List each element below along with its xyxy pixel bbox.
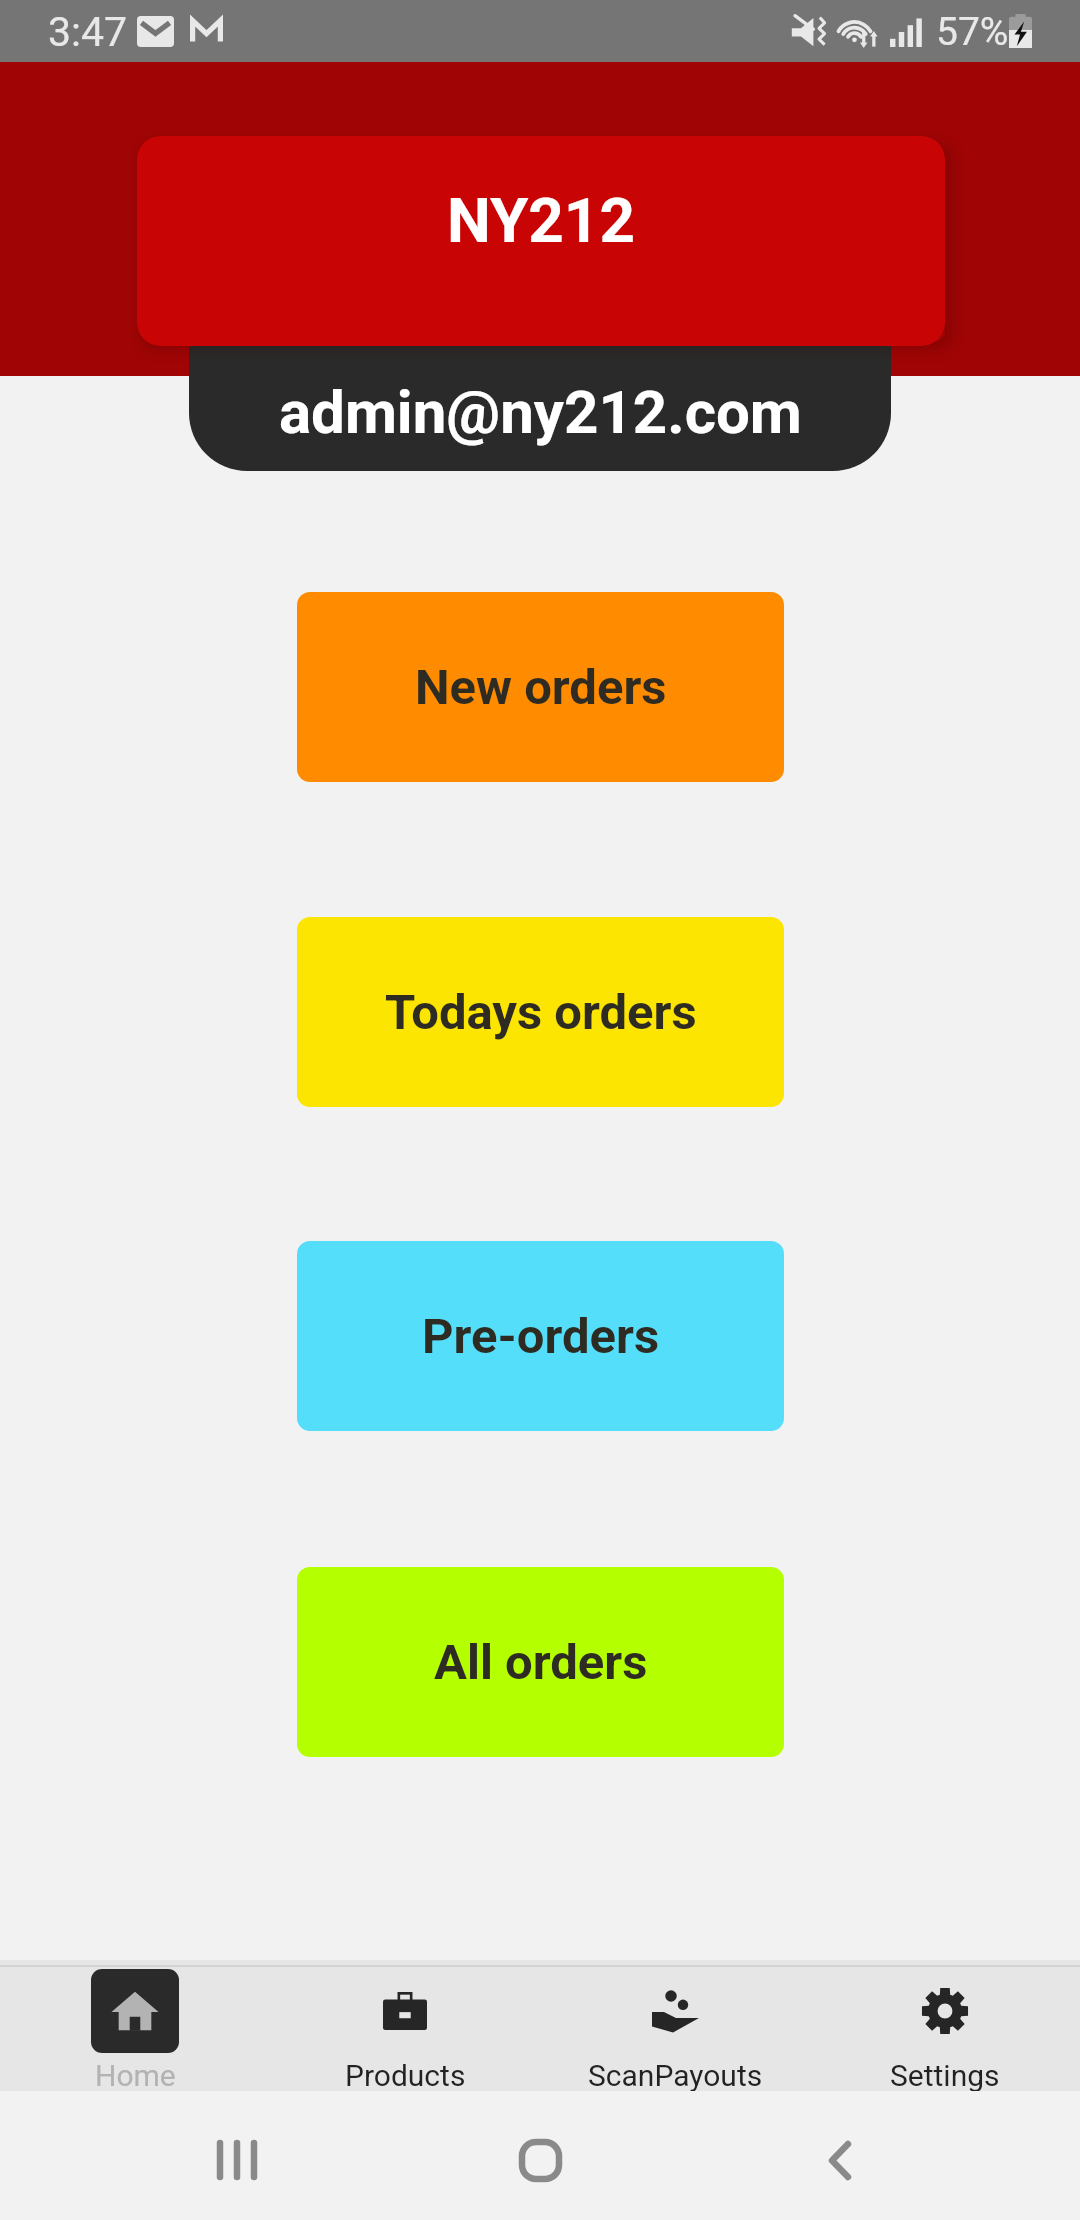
other: Home: [111, 1987, 159, 2035]
staticText: ScanPayouts: [588, 2058, 763, 2091]
button[interactable]: All orders: [297, 1567, 784, 1757]
staticText: Settings: [890, 2058, 1000, 2091]
other: Settings: [921, 1987, 969, 2035]
staticText: All orders: [434, 1634, 648, 1691]
button[interactable]: Settings: [810, 1960, 1080, 2091]
staticText: Products: [345, 2058, 466, 2091]
button[interactable]: Home: [480, 2105, 600, 2215]
button[interactable]: Back: [780, 2105, 900, 2215]
other: Products: [383, 1992, 427, 2030]
staticText: 57%: [936, 9, 1009, 55]
button[interactable]: Pre-orders: [297, 1241, 784, 1431]
staticText: Home: [95, 2058, 176, 2091]
button[interactable]: New orders: [297, 592, 784, 782]
staticText: New orders: [415, 659, 667, 716]
button[interactable]: Products: [270, 1960, 540, 2091]
staticText: Pre-orders: [422, 1308, 660, 1365]
button[interactable]: admin@ny212.com: [189, 290, 891, 471]
staticText: 3:47: [48, 8, 128, 56]
other: Scan Payouts: [650, 1989, 700, 2033]
button[interactable]: Recent apps: [177, 2105, 297, 2215]
button[interactable]: Home: [0, 1960, 270, 2091]
staticText: admin@ny212.com: [279, 377, 802, 447]
button[interactable]: Todays orders: [297, 917, 784, 1107]
staticText: Todays orders: [385, 984, 697, 1041]
button[interactable]: Scan Payouts: [540, 1960, 810, 2091]
staticText: NY212: [447, 184, 635, 257]
button[interactable]: NY212: [137, 136, 945, 346]
